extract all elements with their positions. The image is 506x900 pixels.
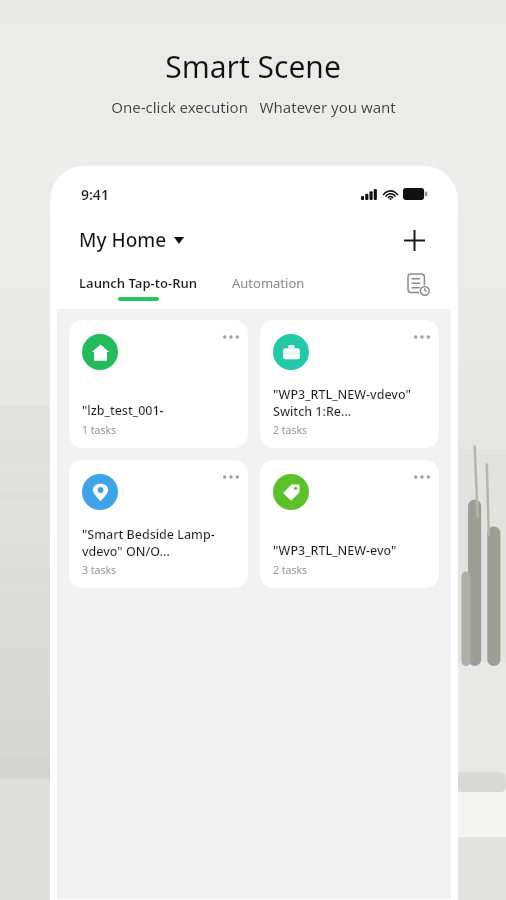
staticText: 9:41 xyxy=(81,185,109,204)
staticText: "lzb_test_001- xyxy=(82,402,164,419)
button[interactable]: Launch Tap-to-Run xyxy=(79,274,198,301)
button[interactable]: More options xyxy=(260,320,439,448)
button[interactable]: Automation xyxy=(232,274,305,300)
button[interactable]: Scene log xyxy=(403,272,433,302)
staticText: Automation xyxy=(232,274,305,292)
staticText: "Smart Bedside Lamp-vdevo" ON/O... xyxy=(82,526,238,559)
staticText: Smart Scene xyxy=(165,46,341,87)
staticText: My Home xyxy=(79,227,167,253)
button[interactable]: More options xyxy=(214,320,248,354)
staticText: 2 tasks xyxy=(273,423,308,437)
staticText: 3 tasks xyxy=(82,563,117,577)
button[interactable]: My Home xyxy=(79,227,184,253)
button[interactable]: More options xyxy=(405,320,439,354)
button[interactable]: More options xyxy=(260,460,439,588)
button[interactable]: More options xyxy=(405,460,439,494)
staticText: "WP3_RTL_NEW-evo" xyxy=(273,542,397,559)
button[interactable]: More options xyxy=(214,460,248,494)
button[interactable]: Add scene xyxy=(399,225,429,255)
staticText: One-click execution Whatever you want xyxy=(111,97,396,117)
staticText: "WP3_RTL_NEW-vdevo" Switch 1:Re... xyxy=(273,386,429,419)
staticText: 1 tasks xyxy=(82,423,117,437)
staticText: 2 tasks xyxy=(273,563,308,577)
button[interactable]: More options xyxy=(69,460,248,588)
staticText: Launch Tap-to-Run xyxy=(79,274,198,292)
button[interactable]: More options xyxy=(69,320,248,448)
